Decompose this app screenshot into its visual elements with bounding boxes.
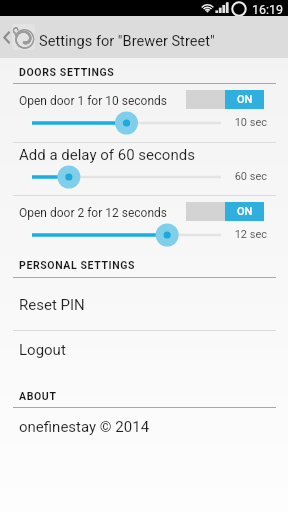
- staticText: Open door 2 for 12 seconds: [19, 206, 167, 220]
- staticText: ABOUT: [19, 390, 57, 402]
- button[interactable]: Toggle on: [186, 202, 264, 221]
- staticText: Reset PIN: [19, 296, 85, 314]
- button[interactable]: Duration slider: [20, 221, 233, 249]
- staticText: ON: [237, 93, 253, 106]
- button[interactable]: Duration slider: [20, 163, 233, 191]
- staticText: DOORS SETTINGS: [19, 66, 115, 78]
- staticText: 60 sec: [0, 170, 267, 183]
- staticText: PERSONAL SETTINGS: [19, 259, 136, 271]
- staticText: Logout: [19, 341, 66, 359]
- staticText: 12 sec: [0, 228, 267, 241]
- staticText: 10 sec: [0, 116, 267, 129]
- button[interactable]: Duration slider: [20, 109, 233, 137]
- staticText: onefinestay © 2014: [19, 418, 150, 436]
- staticText: 16:19: [252, 2, 284, 17]
- staticText: ON: [237, 205, 253, 218]
- staticText: Open door 1 for 10 seconds: [19, 94, 167, 108]
- staticText: Settings for "Brewer Street": [39, 32, 215, 49]
- button[interactable]: Toggle on: [186, 90, 264, 109]
- staticText: Add a delay of 60 seconds: [19, 146, 195, 164]
- button[interactable]: Navigate up: [0, 16, 288, 58]
